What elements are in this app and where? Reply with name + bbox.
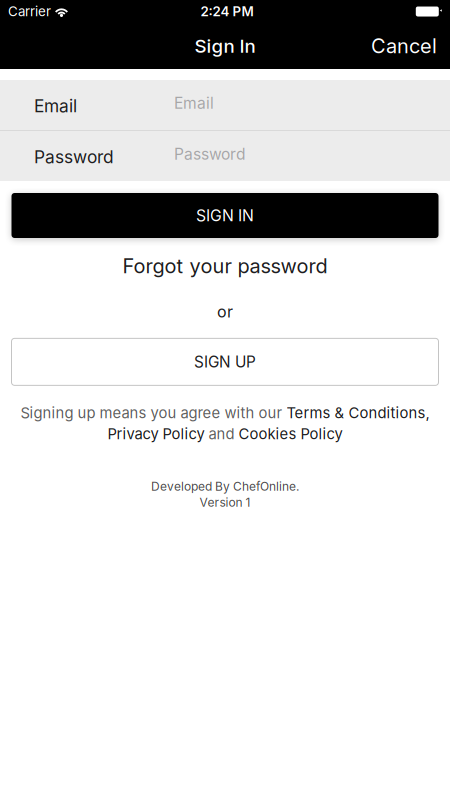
staticText: Developed By ChefOnline. [151,479,299,494]
staticText: and [204,425,238,443]
staticText: Version 1 [199,495,250,510]
staticText: Email [34,95,77,116]
staticText: Cookies Policy [238,425,342,443]
staticText: Email [174,94,214,112]
button[interactable]: Forgot your password [11,253,438,279]
button[interactable]: SIGN IN [11,193,438,238]
staticText: Carrier [8,3,51,19]
staticText: SIGN IN [196,206,254,225]
button[interactable]: Cookies Policy [238,425,342,443]
button[interactable]: Privacy Policy [107,425,204,443]
staticText: Signing up means you agree with our [20,404,286,422]
staticText: SIGN UP [194,353,256,371]
button[interactable]: Terms & Conditions, [286,404,429,422]
staticText: Terms & Conditions, [286,404,429,422]
staticText: Password [34,146,114,167]
button[interactable]: Cancel [358,23,450,69]
staticText: Password [174,145,246,163]
staticText: Forgot your password [122,254,327,278]
staticText: Privacy Policy [107,425,204,443]
button[interactable]: SIGN UP [11,338,438,385]
staticText: Sign In [194,35,255,57]
staticText: or [217,302,233,321]
staticText: Cancel [371,34,437,58]
staticText: 2:24 PM [200,3,253,19]
